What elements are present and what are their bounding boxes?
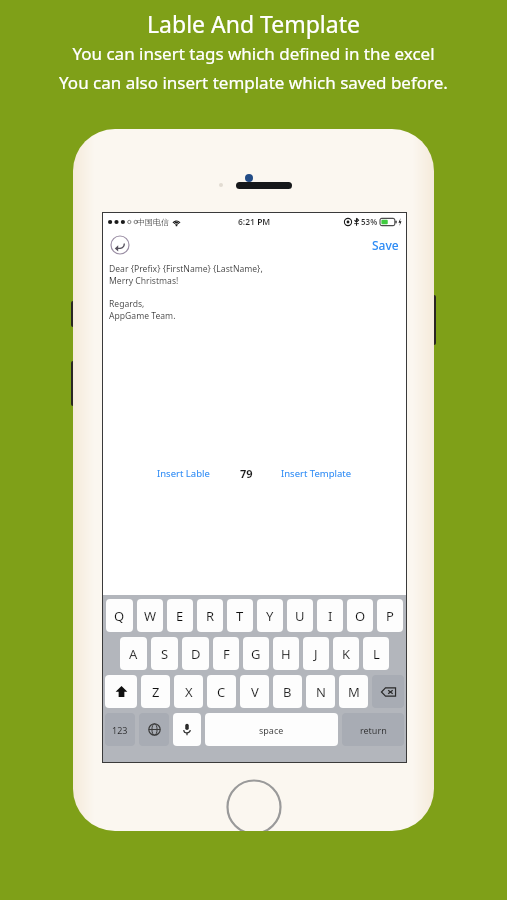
- staticText: V: [251, 683, 259, 701]
- button[interactable]: Back: [110, 235, 130, 255]
- button[interactable]: M: [339, 675, 368, 708]
- staticText: X: [185, 683, 193, 701]
- staticText: I: [328, 607, 333, 625]
- button[interactable]: L: [363, 637, 389, 670]
- button[interactable]: Z: [141, 675, 170, 708]
- staticText: B: [283, 683, 292, 701]
- staticText: Y: [266, 607, 274, 625]
- button[interactable]: W: [137, 599, 163, 632]
- button[interactable]: P: [377, 599, 403, 632]
- staticText: You can also insert template which saved…: [59, 71, 448, 94]
- staticText: Lable And Template: [147, 8, 360, 39]
- button[interactable]: Save: [365, 232, 406, 258]
- button[interactable]: H: [273, 637, 299, 670]
- staticText: Dear {Prefix} {FirstName} {LastName},: [109, 263, 263, 275]
- button[interactable]: Q: [106, 599, 133, 632]
- button[interactable]: A: [120, 637, 147, 670]
- button[interactable]: Shift: [105, 675, 137, 708]
- staticText: N: [316, 683, 326, 701]
- button[interactable]: S: [151, 637, 178, 670]
- button[interactable]: J: [303, 637, 329, 670]
- staticText: Merry Christmas!: [109, 275, 179, 287]
- button[interactable]: Dictation: [173, 713, 201, 746]
- button[interactable]: Backspace: [372, 675, 404, 708]
- staticText: K: [342, 645, 351, 663]
- button[interactable]: Y: [257, 599, 283, 632]
- button[interactable]: Space: [205, 713, 338, 746]
- staticText: G: [251, 645, 261, 663]
- staticText: W: [144, 607, 157, 625]
- staticText: S: [161, 645, 169, 663]
- staticText: Insert Template: [281, 467, 352, 480]
- staticText: Save: [372, 237, 399, 253]
- staticText: You can insert tags which defined in the…: [72, 42, 435, 65]
- staticText: A: [129, 645, 138, 663]
- button[interactable]: Change keyboard: [139, 713, 169, 746]
- staticText: 中国电信: [137, 217, 169, 227]
- button[interactable]: I: [317, 599, 343, 632]
- staticText: Z: [152, 683, 160, 701]
- staticText: 6:21 PM: [238, 216, 271, 228]
- staticText: 53%: [361, 216, 378, 227]
- staticText: Insert Lable: [157, 467, 210, 480]
- button[interactable]: U: [287, 599, 313, 632]
- staticText: P: [386, 607, 394, 625]
- button[interactable]: C: [207, 675, 236, 708]
- staticText: return: [360, 724, 387, 736]
- staticText: D: [191, 645, 201, 663]
- button[interactable]: E: [167, 599, 193, 632]
- staticText: R: [206, 607, 215, 625]
- button[interactable]: Return: [342, 713, 404, 746]
- button[interactable]: O: [347, 599, 373, 632]
- button[interactable]: Home: [226, 779, 282, 831]
- button[interactable]: K: [333, 637, 359, 670]
- staticText: Regards,: [109, 298, 145, 310]
- staticText: C: [217, 683, 226, 701]
- button[interactable]: Numbers: [105, 713, 135, 746]
- staticText: J: [314, 645, 318, 663]
- button[interactable]: Insert Lable: [153, 463, 214, 484]
- button[interactable]: X: [174, 675, 203, 708]
- staticText: L: [373, 645, 380, 663]
- staticText: Q: [114, 607, 125, 625]
- staticText: T: [236, 607, 244, 625]
- staticText: H: [281, 645, 291, 663]
- staticText: E: [176, 607, 184, 625]
- button[interactable]: D: [182, 637, 209, 670]
- button[interactable]: Insert Template: [277, 463, 356, 484]
- staticText: 79: [240, 466, 253, 481]
- staticText: AppGame Team.: [109, 310, 176, 322]
- staticText: 123: [112, 724, 128, 736]
- staticText: U: [295, 607, 305, 625]
- button[interactable]: T: [227, 599, 253, 632]
- button[interactable]: V: [240, 675, 269, 708]
- staticText: M: [348, 683, 360, 701]
- button[interactable]: F: [213, 637, 239, 670]
- button[interactable]: B: [273, 675, 302, 708]
- button[interactable]: R: [197, 599, 223, 632]
- staticText: F: [223, 645, 230, 663]
- staticText: space: [259, 724, 284, 736]
- staticText: O: [355, 607, 366, 625]
- button[interactable]: G: [243, 637, 269, 670]
- button[interactable]: N: [306, 675, 335, 708]
